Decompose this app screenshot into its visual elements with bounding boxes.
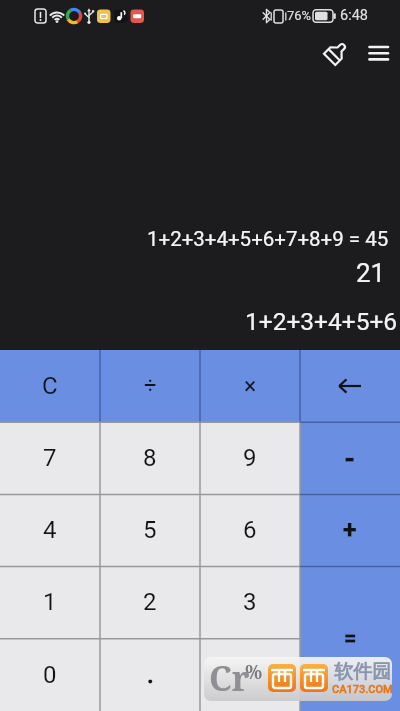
button[interactable]: 0 — [0, 638, 100, 711]
staticText: 2 — [143, 588, 157, 616]
staticText: 6:48 — [340, 7, 368, 24]
staticText: 7 — [43, 444, 57, 472]
staticText: 6 — [243, 516, 257, 544]
button[interactable]: 8 — [100, 422, 200, 494]
staticText: 3 — [243, 588, 257, 616]
button[interactable]: 6 — [200, 494, 300, 566]
button[interactable]: + — [300, 494, 400, 566]
staticText: 5 — [143, 516, 157, 544]
staticText: + — [343, 516, 357, 544]
button[interactable]: ÷ — [100, 350, 200, 422]
staticText: . — [147, 661, 154, 689]
button[interactable]: . — [100, 638, 200, 711]
button[interactable]: 3 — [200, 566, 300, 638]
staticText: 软件园 — [334, 660, 391, 684]
button[interactable] — [200, 638, 300, 711]
staticText: 76% — [287, 8, 312, 23]
staticText: 1+2+3+4+5+6+7+8+9 = 45 — [147, 227, 389, 251]
staticText: ÷ — [144, 373, 157, 399]
button[interactable]: 1 — [0, 566, 100, 638]
button[interactable]: - — [300, 422, 400, 494]
button[interactable]: = — [300, 566, 400, 711]
staticText: Cr — [209, 657, 250, 699]
staticText: - — [345, 442, 355, 475]
staticText: × — [244, 373, 257, 400]
staticText: 4 — [43, 516, 57, 544]
staticText: 1 — [43, 588, 57, 616]
button[interactable] — [362, 39, 394, 67]
button[interactable]: 2 — [100, 566, 200, 638]
staticText: 9 — [243, 444, 257, 472]
button[interactable]: 5 — [100, 494, 200, 566]
staticText: = — [344, 626, 357, 652]
button[interactable] — [300, 350, 400, 422]
staticText: % — [245, 659, 263, 685]
staticText: 8 — [143, 444, 157, 472]
button[interactable]: 4 — [0, 494, 100, 566]
button[interactable]: 9 — [200, 422, 300, 494]
button[interactable]: 7 — [0, 422, 100, 494]
staticText: CA173.COM — [332, 683, 392, 696]
button[interactable] — [318, 36, 354, 70]
button[interactable]: C — [0, 350, 100, 422]
staticText: 1+2+3+4+5+6 — [245, 307, 398, 336]
staticText: 21 — [356, 258, 386, 288]
staticText: C — [42, 372, 58, 400]
staticText: 0 — [43, 661, 57, 689]
button[interactable]: × — [200, 350, 300, 422]
